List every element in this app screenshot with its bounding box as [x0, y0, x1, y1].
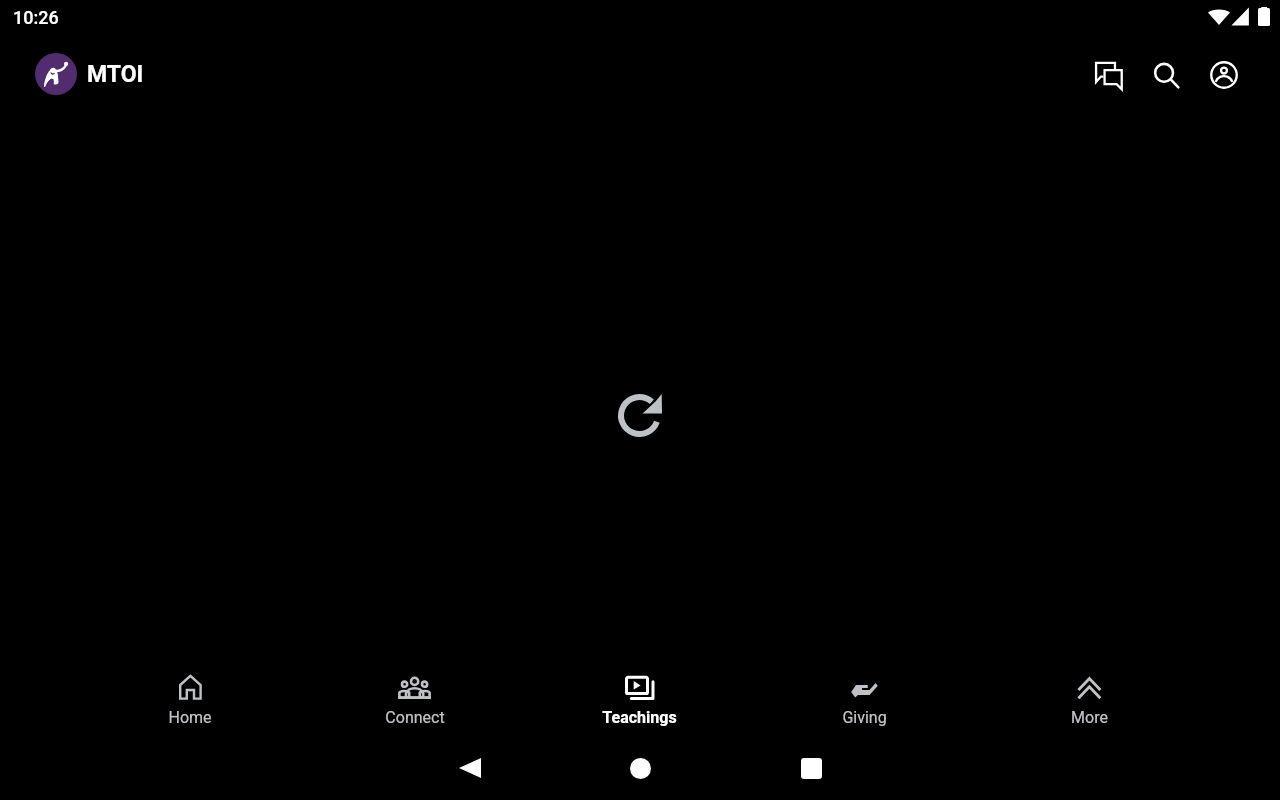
staticText: Home: [168, 708, 212, 727]
staticText: More: [1071, 708, 1108, 727]
button[interactable]: Home: [555, 736, 726, 800]
button[interactable]: MTOI: [35, 53, 144, 95]
staticText: Giving: [842, 708, 887, 727]
button[interactable]: More: [977, 660, 1202, 740]
button[interactable]: Search: [1142, 51, 1190, 99]
button[interactable]: Teachings: [527, 660, 752, 740]
staticText: 10:26: [13, 7, 59, 28]
button[interactable]: Account: [1200, 51, 1248, 99]
staticText: MTOI: [87, 61, 144, 88]
button[interactable]: Connect: [302, 660, 527, 740]
button[interactable]: Back: [384, 736, 555, 800]
staticText: Connect: [385, 708, 445, 727]
staticText: Teachings: [602, 708, 677, 727]
button[interactable]: Recents: [726, 736, 897, 800]
button[interactable]: Giving: [752, 660, 977, 740]
button[interactable]: Messages: [1084, 51, 1132, 99]
button[interactable]: Home: [78, 660, 302, 740]
